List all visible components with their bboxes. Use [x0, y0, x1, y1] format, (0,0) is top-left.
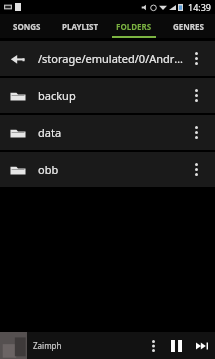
staticText: /storage/emulated/0/Android: [38, 51, 187, 66]
button[interactable]: FOLDERS: [107, 14, 161, 38]
button[interactable]: obb: [0, 152, 215, 187]
button[interactable]: PLAYLIST: [53, 14, 107, 38]
staticText: GENRES: [173, 21, 204, 32]
button[interactable]: More options: [143, 332, 163, 359]
staticText: SONGS: [13, 21, 41, 32]
button[interactable]: More options: [187, 78, 205, 113]
staticText: backup: [38, 88, 187, 103]
staticText: 14:39: [188, 1, 212, 13]
button[interactable]: /storage/emulated/0/Android: [0, 41, 215, 76]
staticText: Zaimph: [33, 340, 62, 351]
button[interactable]: Pause: [163, 332, 189, 359]
staticText: PLAYLIST: [62, 21, 99, 32]
button[interactable]: More options: [187, 152, 205, 187]
button[interactable]: data: [0, 115, 215, 150]
button[interactable]: Next track: [189, 332, 215, 359]
button[interactable]: SONGS: [0, 14, 53, 38]
button[interactable]: GENRES: [161, 14, 215, 38]
button[interactable]: More options: [187, 115, 205, 150]
staticText: FOLDERS: [116, 21, 152, 32]
button[interactable]: More options: [187, 41, 205, 76]
button[interactable]: Zaimph: [0, 332, 215, 359]
staticText: obb: [38, 162, 187, 177]
button[interactable]: backup: [0, 78, 215, 113]
staticText: data: [38, 125, 187, 140]
